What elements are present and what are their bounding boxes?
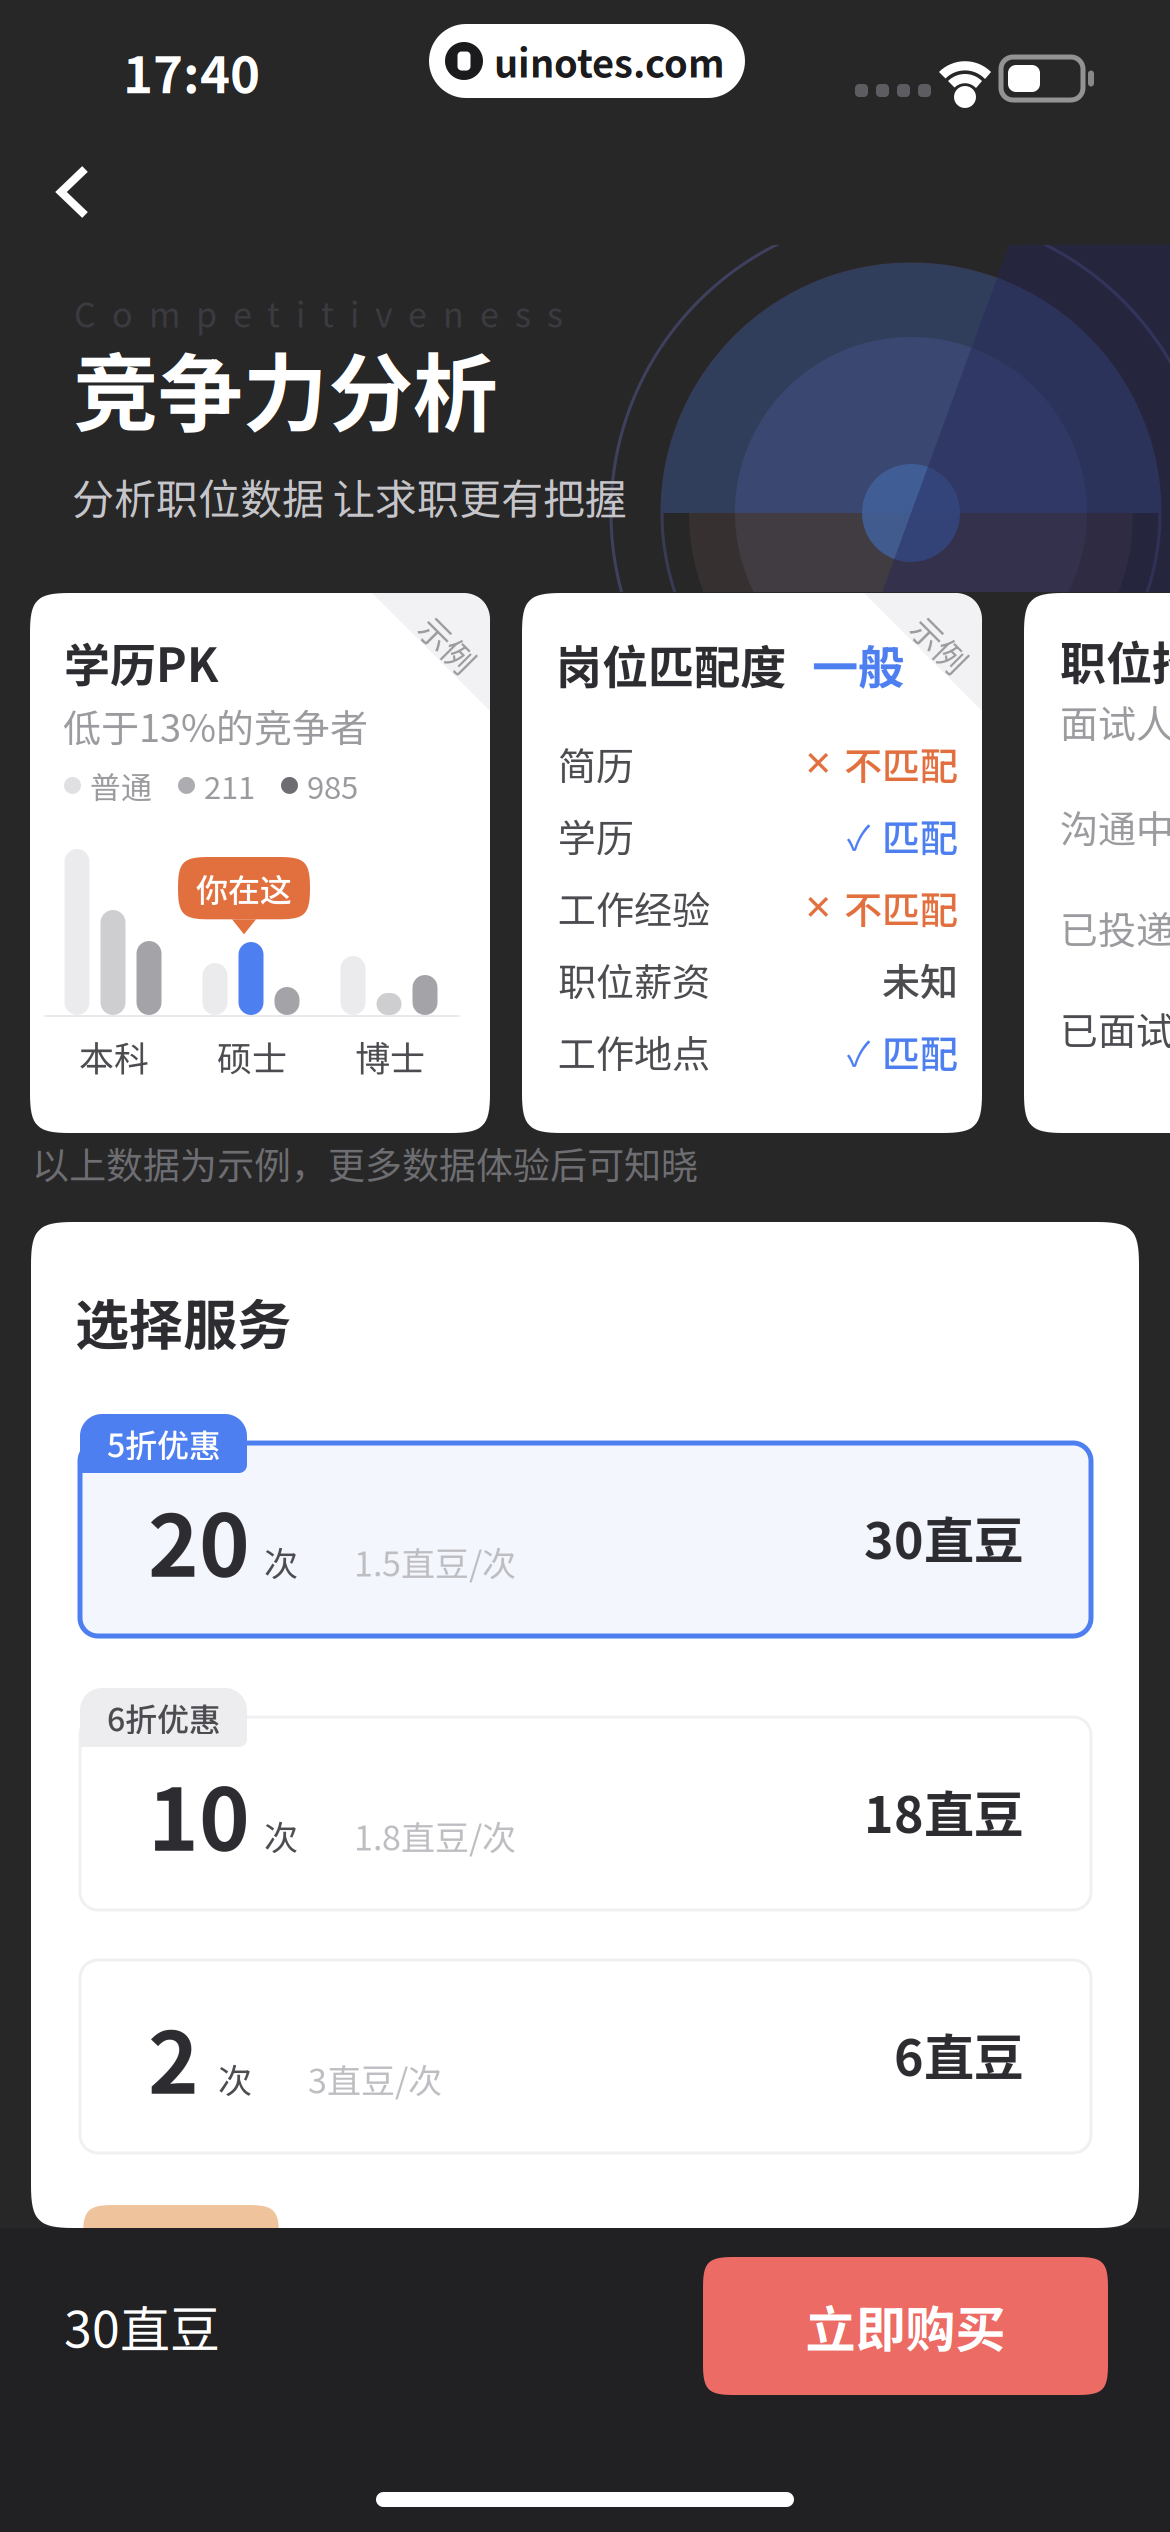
staticText: ✓ xyxy=(847,811,870,860)
staticText: 匹配 xyxy=(882,1024,958,1079)
staticText: 本科 xyxy=(79,1031,149,1082)
staticText: 10 xyxy=(148,1751,250,1875)
staticText: 次 xyxy=(264,1537,298,1586)
staticText: Competitiveness xyxy=(74,288,563,337)
staticText: 2 xyxy=(148,1994,199,2118)
staticText: 1.8直豆/次 xyxy=(354,1811,516,1860)
staticText: 不匹配 xyxy=(844,736,958,791)
staticText: 次 xyxy=(264,1811,298,1860)
staticText: 学历 xyxy=(558,808,634,863)
staticText: 不匹配 xyxy=(844,880,958,935)
staticText: 匹配 xyxy=(882,808,958,863)
staticText: 简历 xyxy=(558,736,634,791)
button[interactable]: 20 xyxy=(31,1222,1042,1444)
staticText: 已面试 xyxy=(1060,1001,1170,1056)
staticText: 985 xyxy=(307,763,358,808)
staticText: 示例 xyxy=(416,621,480,667)
staticText: 211 xyxy=(204,763,255,808)
staticText: 低于13%的竞争者 xyxy=(63,698,368,753)
staticText: 3直豆/次 xyxy=(308,2054,442,2103)
staticText: 30直豆 xyxy=(864,1501,1024,1573)
staticText: 分析职位数据 让求职更有把握 xyxy=(72,466,627,527)
staticText: 岗位匹配度 xyxy=(556,631,786,698)
staticText: 选择服务 xyxy=(75,1282,291,1360)
staticText: 沟通中 xyxy=(1060,799,1170,854)
staticText: 工作经验 xyxy=(558,880,710,935)
staticText: 以上数据为示例，更多数据体验后可知晓 xyxy=(32,1136,698,1190)
staticText: 面试人数较少 xyxy=(1060,694,1170,749)
button[interactable]: Back xyxy=(30,145,150,245)
staticText: 次 xyxy=(218,2054,252,2103)
staticText: 5折优惠 xyxy=(107,1420,221,1467)
staticText: 已投递 xyxy=(1060,900,1170,955)
staticText: 1.5直豆/次 xyxy=(354,1537,516,1586)
staticText: 职位薪资 xyxy=(558,952,710,1007)
staticText: ✓ xyxy=(847,1027,870,1076)
staticText: 学历PK xyxy=(64,629,219,696)
button[interactable]: 10 xyxy=(31,1222,1042,1444)
button[interactable]: 2 xyxy=(31,1222,1042,1444)
staticText: 30直豆 xyxy=(64,2290,220,2362)
staticText: 普通 xyxy=(90,763,152,808)
staticText: uinotes.com xyxy=(494,33,725,88)
staticText: 每天赠送 xyxy=(111,2219,255,2271)
staticText: 工作地点 xyxy=(558,1024,710,1079)
staticText: 职位招聘进度 xyxy=(1060,627,1170,694)
button[interactable]: 立即购买 xyxy=(703,2257,1108,2395)
staticText: ✕ xyxy=(804,888,832,927)
staticText: 6直豆 xyxy=(894,2018,1024,2090)
staticText: 17:40 xyxy=(123,34,260,108)
staticText: 立即购买 xyxy=(805,2290,1005,2362)
staticText: 20 xyxy=(148,1477,250,1601)
staticText: 一般 xyxy=(812,631,904,698)
staticText: 未知 xyxy=(882,952,958,1007)
staticText: 你在这 xyxy=(196,865,292,911)
staticText: 6折优惠 xyxy=(107,1694,221,1741)
staticText: 示例 xyxy=(908,621,972,667)
staticText: 竞争力分析 xyxy=(73,326,498,449)
staticText: 硕士 xyxy=(217,1031,287,1082)
staticText: 博士 xyxy=(355,1031,425,1082)
staticText: 18直豆 xyxy=(864,1775,1024,1847)
staticText: ✕ xyxy=(804,744,832,783)
